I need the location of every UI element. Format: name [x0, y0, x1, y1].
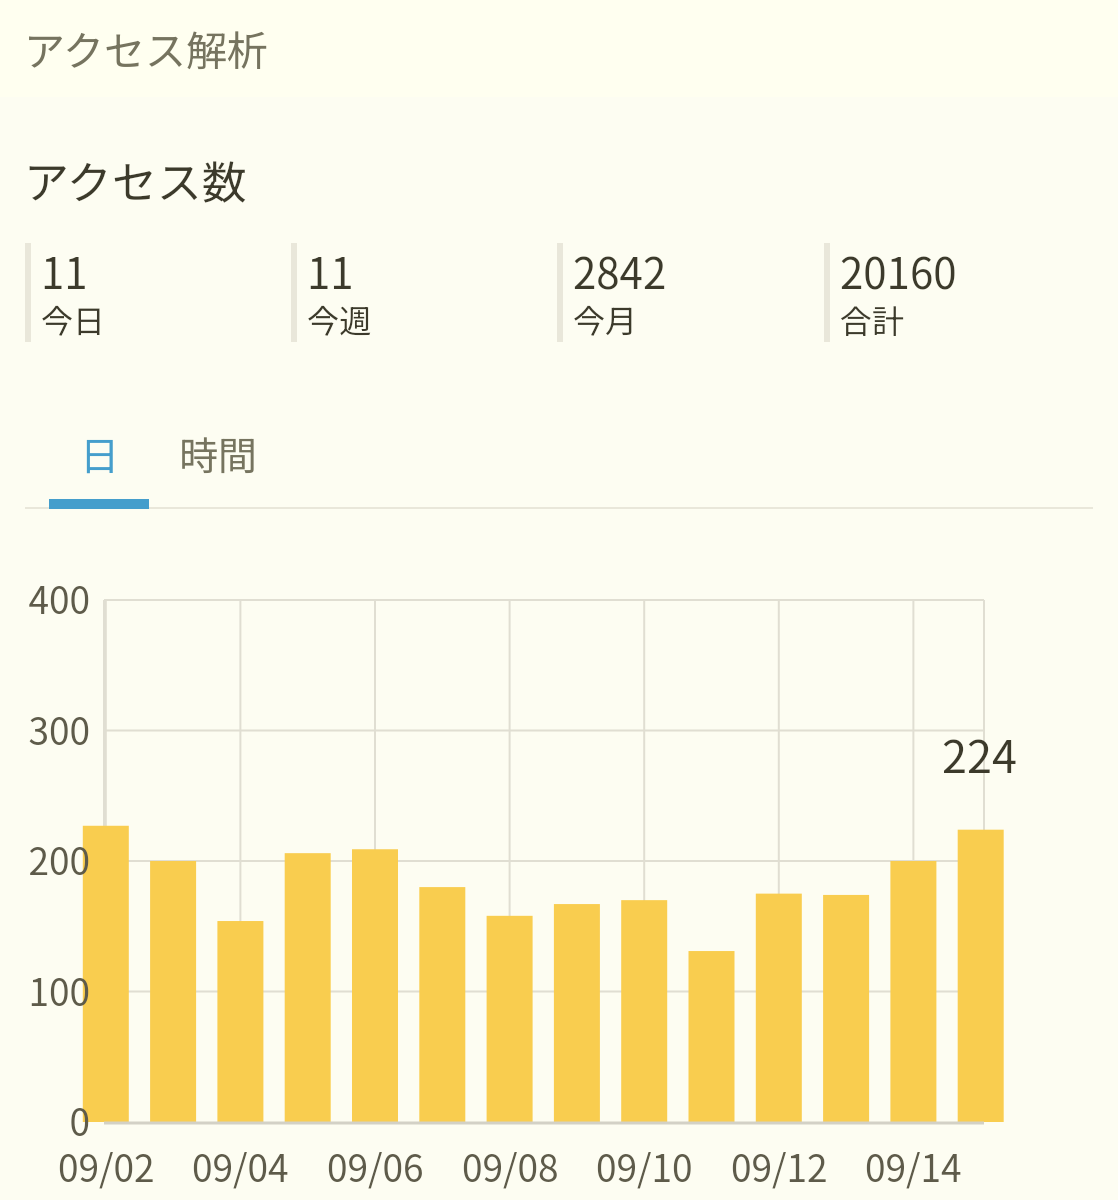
staticText: 09/10 [596, 1139, 693, 1193]
staticText: 300 [28, 702, 90, 756]
staticText: 09/08 [462, 1139, 559, 1193]
button[interactable]: 20160 [824, 243, 1091, 342]
button[interactable]: 日 [40, 411, 159, 495]
staticText: 100 [28, 963, 90, 1017]
staticText: 合計 [840, 296, 905, 342]
staticText: 09/12 [731, 1139, 828, 1193]
staticText: 0 [69, 1093, 90, 1147]
staticText: アクセス解析 [24, 18, 268, 77]
staticText: 224 [942, 721, 1017, 786]
staticText: 今週 [307, 296, 372, 342]
button[interactable]: 2842 [557, 243, 824, 342]
staticText: 09/06 [327, 1139, 424, 1193]
staticText: 日 [80, 425, 120, 481]
staticText: 200 [28, 832, 90, 886]
staticText: 09/14 [865, 1139, 962, 1193]
staticText: 今月 [573, 296, 638, 342]
staticText: 今日 [41, 296, 106, 342]
staticText: 09/02 [58, 1139, 155, 1193]
staticText: アクセス数 [24, 147, 247, 212]
staticText: 11 [41, 240, 88, 301]
staticText: 11 [307, 240, 354, 301]
button[interactable]: 11 [25, 243, 291, 342]
staticText: 2842 [573, 240, 667, 301]
button[interactable]: 時間 [159, 411, 278, 495]
staticText: 20160 [840, 240, 957, 301]
staticText: 400 [28, 571, 90, 625]
staticText: 時間 [179, 425, 258, 481]
button[interactable]: 11 [291, 243, 557, 342]
staticText: 09/04 [192, 1139, 289, 1193]
